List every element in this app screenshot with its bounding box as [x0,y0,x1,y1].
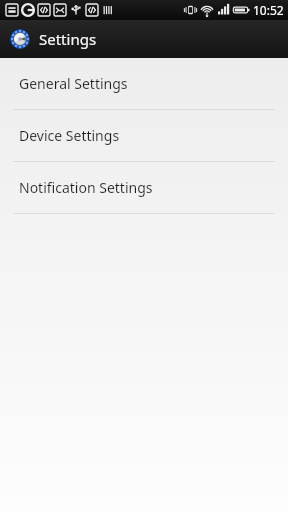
staticText: Device Settings [19,126,120,145]
staticText: Notification Settings [19,178,153,197]
staticText: 10:52 [253,2,284,18]
other: Settings app icon [9,28,31,50]
staticText: Settings [39,29,97,49]
button[interactable]: General Settings [0,58,288,109]
button[interactable]: Settings app icon [0,20,288,58]
button[interactable]: Device Settings [0,110,288,161]
staticText: General Settings [19,74,128,93]
button[interactable]: Notification Settings [0,162,288,213]
